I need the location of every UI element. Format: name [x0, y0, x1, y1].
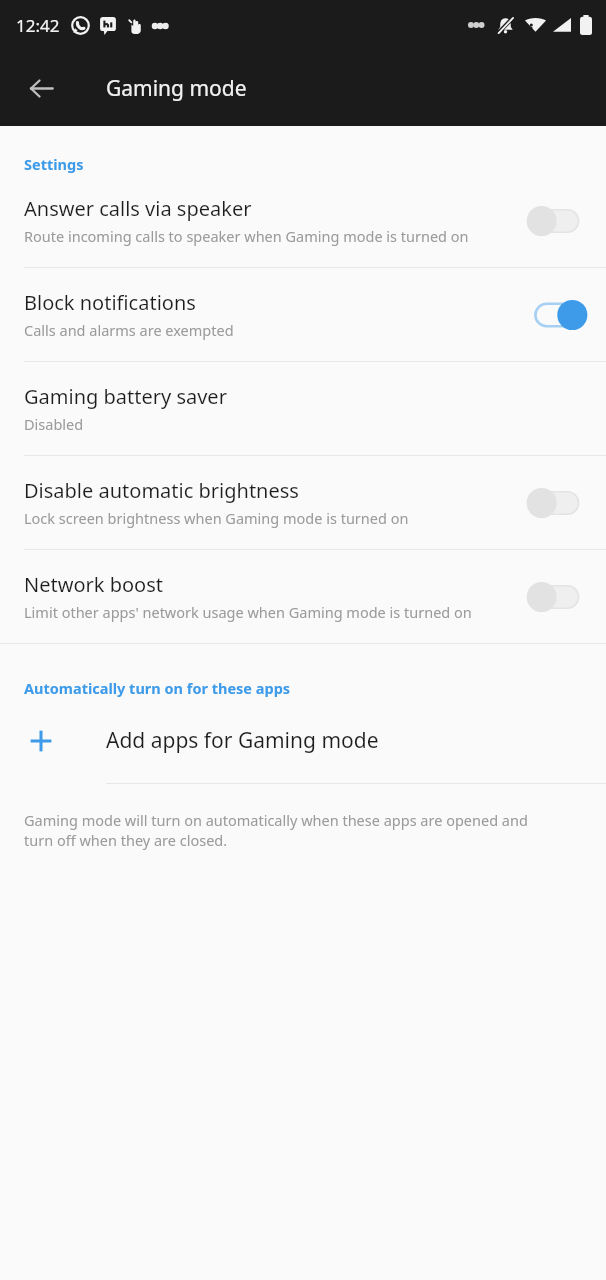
button[interactable]: Toggle off [526, 201, 588, 241]
staticText: Limit other apps' network usage when Gam… [24, 602, 472, 622]
staticText: Block notifications [24, 289, 196, 316]
staticText: 12:42 [16, 14, 60, 37]
button[interactable]: Network boost [0, 550, 606, 643]
staticText: Calls and alarms are exempted [24, 320, 234, 340]
staticText: Settings [24, 154, 84, 174]
staticText: Automatically turn on for these apps [24, 678, 291, 698]
staticText: Network boost [24, 571, 163, 598]
staticText: Disabled [24, 414, 84, 434]
staticText: Gaming mode will turn on automatically w… [24, 810, 560, 850]
staticText: Lock screen brightness when Gaming mode … [24, 508, 409, 528]
button[interactable]: Gaming battery saver [0, 362, 606, 455]
button[interactable]: Back [17, 64, 65, 112]
staticText: Answer calls via speaker [24, 195, 252, 222]
staticText: Gaming mode [106, 74, 247, 103]
staticText: Route incoming calls to speaker when Gam… [24, 226, 469, 246]
button[interactable]: Toggle off [526, 483, 588, 523]
button[interactable]: Add apps for Gaming mode [0, 698, 606, 783]
button[interactable]: Disable automatic brightness [0, 456, 606, 549]
button[interactable]: Toggle off [526, 577, 588, 617]
button[interactable]: Toggle on [526, 295, 588, 335]
staticText: Gaming battery saver [24, 383, 227, 410]
button[interactable]: Answer calls via speaker [0, 174, 606, 267]
staticText: Add apps for Gaming mode [106, 726, 379, 755]
staticText: Disable automatic brightness [24, 477, 299, 504]
button[interactable]: Block notifications [0, 268, 606, 361]
